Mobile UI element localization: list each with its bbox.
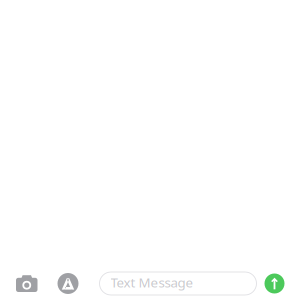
button[interactable]: Apps: [57, 273, 78, 294]
button[interactable]: Send: [264, 273, 284, 293]
button[interactable]: Take photo: [16, 275, 37, 292]
staticText: Text Message: [110, 273, 193, 291]
button[interactable]: Text Message: [99, 272, 256, 295]
